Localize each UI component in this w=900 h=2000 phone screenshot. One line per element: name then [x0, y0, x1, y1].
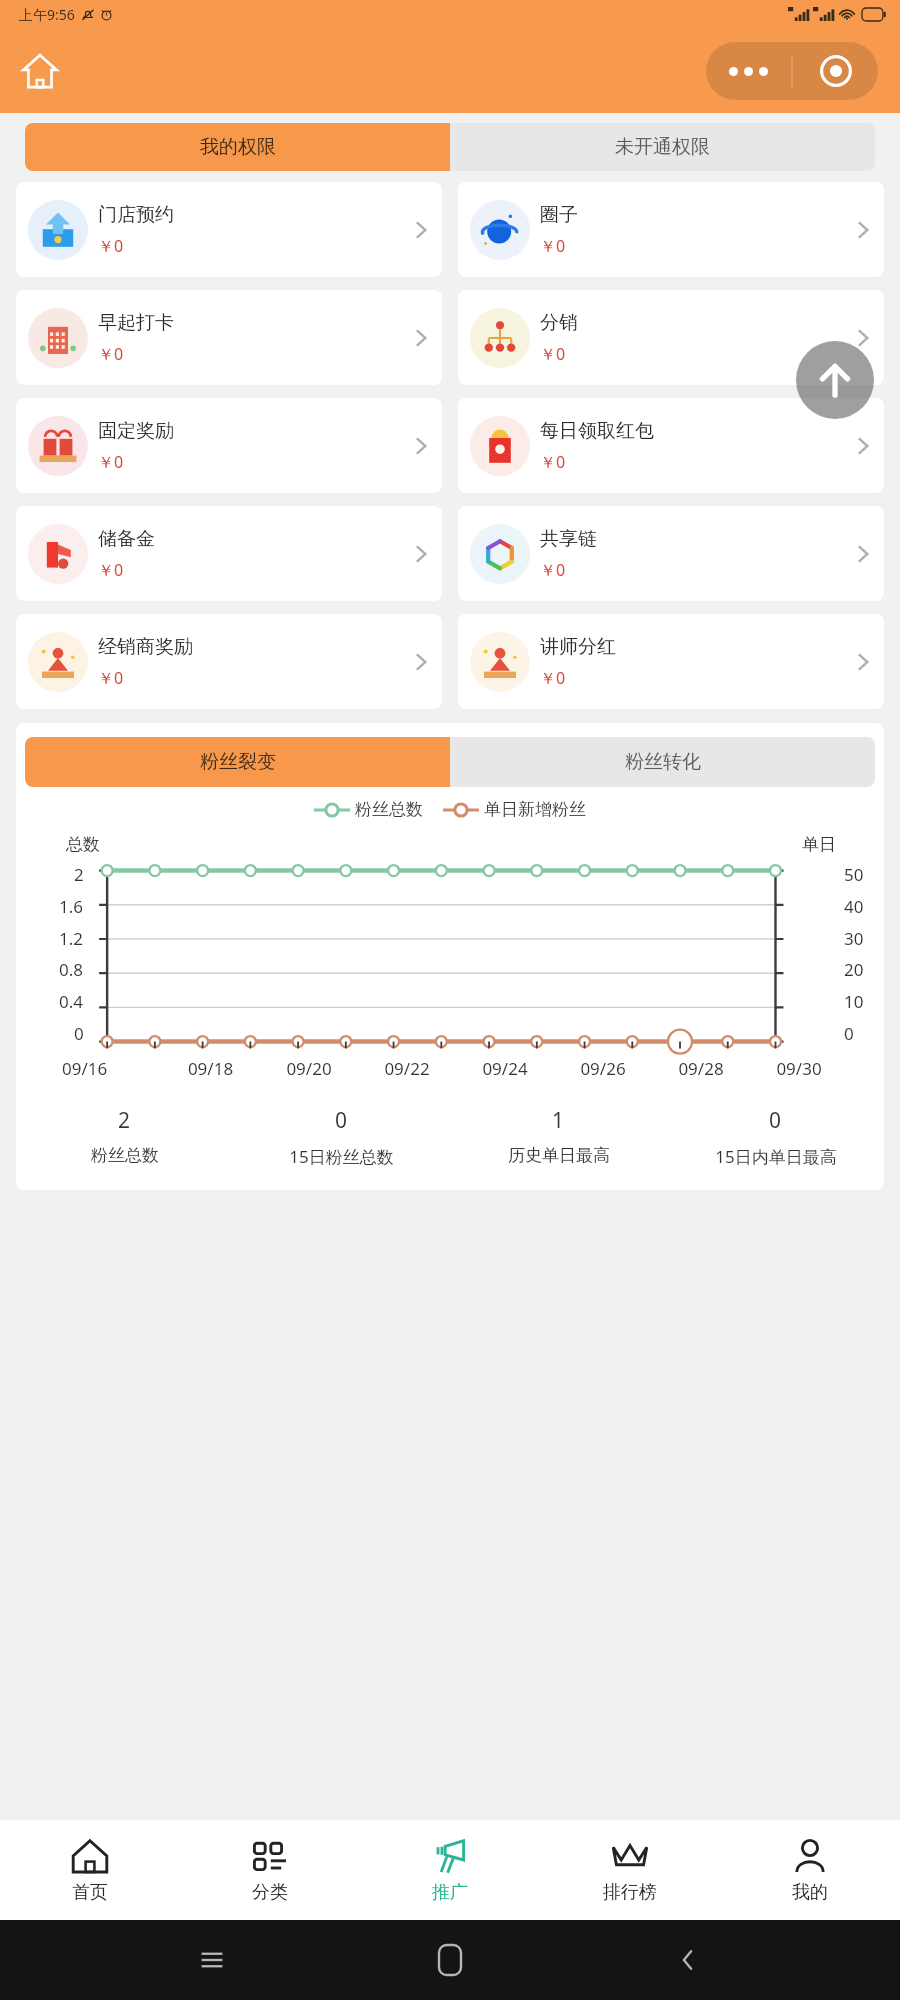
staticText: 历史单日最高 [508, 1145, 610, 1166]
staticText: 0 [74, 1022, 84, 1045]
staticText: 储备金 [98, 527, 155, 551]
staticText: 粉丝总数 [355, 799, 423, 820]
button[interactable]: 储备金 [16, 506, 442, 601]
staticText: ￥0 [98, 235, 124, 257]
staticText: 50 [844, 863, 864, 886]
button[interactable]: 分销 [458, 290, 884, 385]
staticText: 10 [844, 990, 864, 1013]
staticText: ￥0 [98, 451, 124, 473]
staticText: ￥0 [98, 343, 124, 365]
staticText: 0.4 [59, 990, 84, 1013]
button[interactable]: 未开通权限 [450, 123, 875, 171]
button[interactable]: 早起打卡 [16, 290, 442, 385]
button[interactable]: 粉丝转化 [450, 737, 875, 787]
staticText: 经销商奖励 [98, 635, 193, 659]
staticText: 粉丝总数 [91, 1145, 159, 1166]
staticText: 1 [552, 1106, 565, 1135]
staticText: 分销 [540, 311, 578, 335]
staticText: 门店预约 [98, 203, 174, 227]
button[interactable]: 分类 [180, 1820, 360, 1920]
staticText: 0.8 [59, 958, 84, 981]
button[interactable]: Back [662, 1934, 714, 1986]
staticText: 15日粉丝总数 [289, 1145, 394, 1168]
staticText: 09/24 [456, 1057, 554, 1080]
staticText: ￥0 [540, 559, 566, 581]
staticText: 共享链 [540, 527, 597, 551]
button[interactable]: Scroll to top [796, 341, 874, 419]
staticText: 分类 [252, 1881, 288, 1904]
staticText: 单日新增粉丝 [484, 799, 586, 820]
staticText: 09/28 [652, 1057, 750, 1080]
staticText: ￥0 [98, 667, 124, 689]
button[interactable]: 经销商奖励 [16, 614, 442, 709]
staticText: 2 [118, 1106, 131, 1135]
staticText: 首页 [72, 1881, 108, 1904]
staticText: 单日 [802, 834, 836, 855]
button[interactable]: 每日领取红包 [458, 398, 884, 493]
button[interactable]: 我的 [720, 1820, 900, 1920]
staticText: ￥0 [98, 559, 124, 581]
staticText: 40 [844, 895, 864, 918]
button[interactable]: 门店预约 [16, 182, 442, 277]
staticText: 固定奖励 [98, 419, 174, 443]
staticText: 我的权限 [200, 135, 276, 159]
staticText: 20 [844, 958, 864, 981]
button[interactable]: 圈子 [458, 182, 884, 277]
staticText: 我的 [792, 1881, 828, 1904]
staticText: 每日领取红包 [540, 419, 654, 443]
staticText: 09/26 [554, 1057, 652, 1080]
staticText: 讲师分红 [540, 635, 616, 659]
staticText: 1.2 [59, 927, 84, 950]
staticText: 0 [769, 1106, 782, 1135]
staticText: 2 [74, 863, 84, 886]
staticText: 粉丝转化 [625, 750, 701, 774]
button[interactable]: Home [424, 1934, 476, 1986]
staticText: 排行榜 [603, 1881, 657, 1904]
staticText: ￥0 [540, 343, 566, 365]
button[interactable]: 排行榜 [540, 1820, 720, 1920]
button[interactable]: 推广 [360, 1820, 540, 1920]
button[interactable]: 讲师分红 [458, 614, 884, 709]
button[interactable]: 首页 [0, 1820, 180, 1920]
staticText: ￥0 [540, 451, 566, 473]
staticText: 圈子 [540, 203, 578, 227]
button[interactable]: Recent apps [186, 1934, 238, 1986]
staticText: 15日内单日最高 [715, 1145, 837, 1168]
staticText: 0 [844, 1022, 854, 1045]
button[interactable]: More options [706, 42, 791, 100]
staticText: 粉丝裂变 [200, 750, 276, 774]
staticText: 0 [335, 1106, 348, 1135]
staticText: 09/18 [161, 1057, 260, 1080]
staticText: 09/30 [750, 1057, 848, 1080]
staticText: 上午9:56 [19, 5, 75, 24]
staticText: 30 [844, 927, 864, 950]
staticText: 总数 [66, 834, 100, 855]
button[interactable]: 我的权限 [25, 123, 450, 171]
staticText: 09/16 [62, 1057, 161, 1080]
staticText: 09/20 [260, 1057, 358, 1080]
staticText: 09/22 [358, 1057, 456, 1080]
button[interactable]: Home [12, 43, 68, 99]
staticText: 1.6 [59, 895, 84, 918]
staticText: ￥0 [540, 235, 566, 257]
staticText: 未开通权限 [615, 135, 710, 159]
staticText: ￥0 [540, 667, 566, 689]
button[interactable]: 粉丝裂变 [25, 737, 450, 787]
button[interactable]: Close [793, 42, 878, 100]
staticText: 早起打卡 [98, 311, 174, 335]
button[interactable]: 固定奖励 [16, 398, 442, 493]
staticText: 推广 [432, 1881, 468, 1904]
button[interactable]: 共享链 [458, 506, 884, 601]
